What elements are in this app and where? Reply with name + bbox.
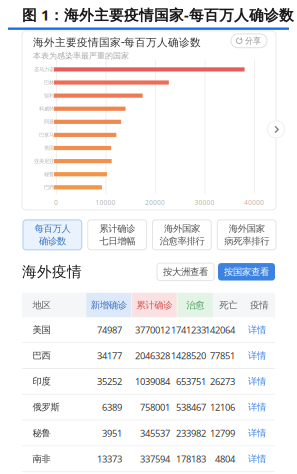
- staticText: 海外国家: [164, 223, 200, 234]
- staticText: 累计确诊: [136, 299, 172, 311]
- staticText: 3951: [102, 427, 122, 439]
- staticText: 74987: [97, 324, 122, 336]
- staticText: 病死率排行: [224, 235, 269, 247]
- staticText: 印度: [32, 376, 50, 387]
- staticText: 详情: [248, 350, 266, 361]
- staticText: 178183: [176, 453, 206, 465]
- staticText: 详情: [248, 324, 266, 336]
- staticText: 巴西: [32, 350, 50, 361]
- staticText: 巴林: [44, 79, 54, 86]
- staticText: 科威特: [39, 105, 54, 112]
- staticText: 秘鲁: [44, 171, 54, 178]
- staticText: 南非: [32, 453, 50, 465]
- staticText: 疫情: [250, 299, 268, 311]
- staticText: 详情: [248, 376, 266, 387]
- staticText: 详情: [248, 427, 266, 439]
- staticText: 七日增幅: [99, 235, 135, 247]
- staticText: 13373: [97, 453, 122, 465]
- staticText: 10000: [95, 198, 115, 207]
- staticText: 40000: [244, 198, 264, 207]
- staticText: 337594: [140, 453, 170, 465]
- staticText: 35252: [97, 375, 122, 388]
- staticText: 死亡: [219, 299, 237, 311]
- staticText: 美国: [32, 324, 50, 336]
- staticText: 治愈率排行: [159, 235, 204, 247]
- staticText: 34177: [97, 349, 122, 362]
- staticText: 确诊数: [39, 235, 66, 247]
- staticText: 海外主要疫情国家-每百万人确诊数: [33, 35, 201, 49]
- button[interactable]: 累计确诊: [88, 220, 147, 250]
- staticText: 智利: [44, 92, 54, 99]
- button[interactable]: 海外国家: [217, 220, 276, 250]
- staticText: 地区: [32, 299, 50, 311]
- staticText: 653751: [176, 375, 206, 388]
- button[interactable]: 下一页: [267, 121, 284, 138]
- staticText: 阿曼: [44, 119, 54, 125]
- staticText: 海外国家: [229, 223, 265, 234]
- staticText: 秘鲁: [32, 427, 50, 439]
- staticText: 77851: [210, 349, 235, 362]
- staticText: 海外疫情: [22, 263, 82, 281]
- button[interactable]: 按大洲查看: [157, 263, 214, 281]
- staticText: 26273: [210, 375, 235, 388]
- staticText: 20000: [145, 198, 165, 207]
- staticText: 亚美尼亚: [34, 158, 54, 164]
- staticText: 233982: [176, 427, 206, 439]
- staticText: 30000: [194, 198, 214, 207]
- staticText: 142064: [205, 324, 235, 336]
- button[interactable]: 分享: [231, 34, 267, 48]
- staticText: 累计确诊: [99, 223, 135, 234]
- staticText: 0: [54, 198, 58, 207]
- staticText: 图 1：海外主要疫情国家-每百万人确诊数: [22, 5, 294, 24]
- staticText: 1741233: [171, 324, 206, 336]
- button[interactable]: 秘鲁: [0, 421, 297, 446]
- button[interactable]: 南非: [0, 446, 297, 472]
- staticText: 分享: [245, 36, 261, 46]
- staticText: 1428520: [171, 349, 206, 362]
- staticText: 12106: [210, 401, 235, 413]
- button[interactable]: 美国: [0, 317, 297, 343]
- staticText: 圣马力诺: [34, 66, 54, 73]
- button[interactable]: 巴西: [0, 343, 297, 369]
- staticText: 本表为感染率最严重的国家: [33, 51, 129, 61]
- button[interactable]: 海外国家: [152, 220, 211, 250]
- staticText: 345537: [140, 427, 170, 439]
- staticText: 1039084: [135, 375, 170, 388]
- staticText: 巴拿马: [39, 132, 54, 138]
- staticText: 每百万人: [34, 223, 70, 234]
- staticText: 治愈: [186, 299, 204, 311]
- button[interactable]: 印度: [0, 369, 297, 395]
- staticText: 6389: [102, 401, 122, 413]
- staticText: 美国: [44, 145, 54, 151]
- staticText: 俄罗斯: [32, 401, 59, 413]
- staticText: 新增确诊: [91, 299, 127, 311]
- button[interactable]: 俄罗斯: [0, 395, 297, 421]
- staticText: 4804: [215, 453, 235, 465]
- staticText: 12799: [210, 427, 235, 439]
- staticText: 2046328: [135, 349, 170, 362]
- button[interactable]: 每百万人: [23, 220, 82, 250]
- staticText: 3770012: [135, 324, 170, 336]
- staticText: 巴西: [44, 184, 54, 191]
- staticText: 758001: [140, 401, 170, 413]
- button[interactable]: 按国家查看: [218, 263, 275, 281]
- staticText: 按国家查看: [224, 266, 269, 278]
- staticText: 详情: [248, 453, 266, 465]
- staticText: 详情: [248, 401, 266, 413]
- staticText: 538467: [176, 401, 206, 413]
- staticText: 按大洲查看: [163, 266, 208, 278]
